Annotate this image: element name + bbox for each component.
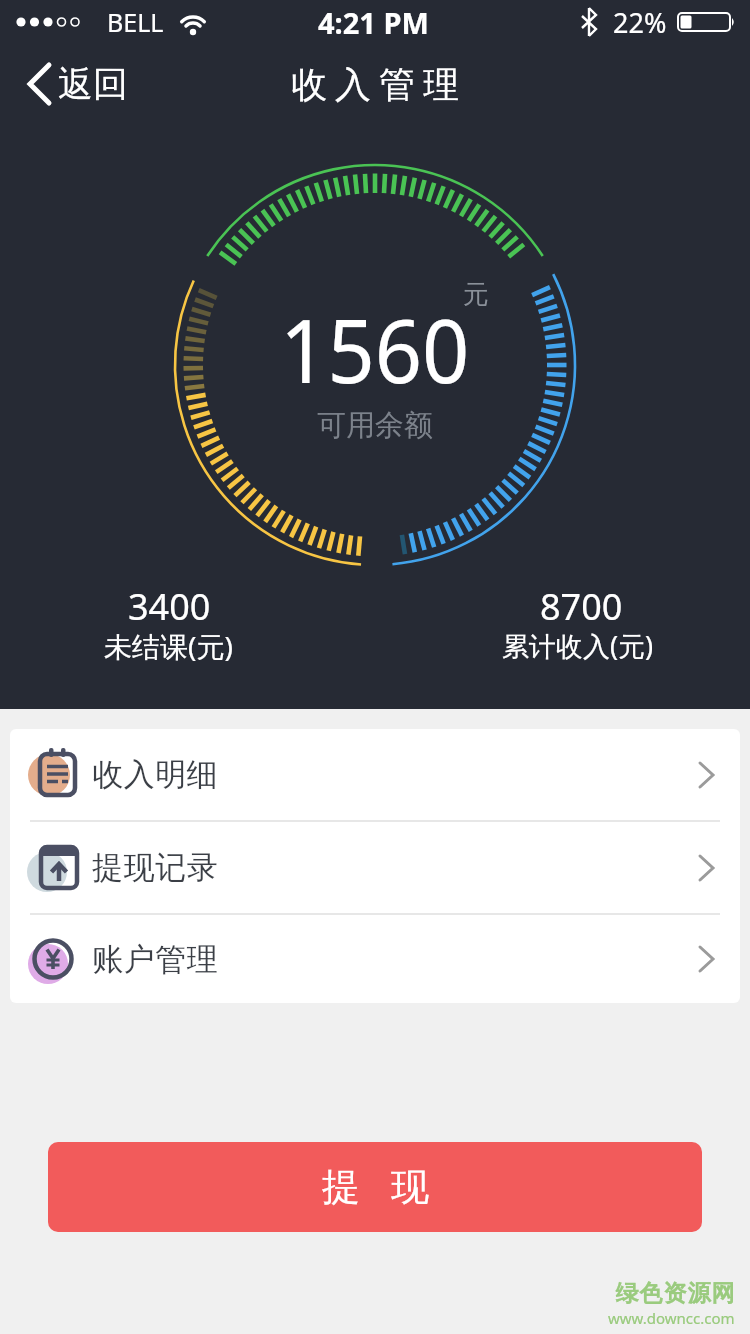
- staticText: 账户管理: [92, 940, 218, 979]
- button[interactable]: 提现记录: [10, 822, 740, 913]
- button[interactable]: 收入明细: [10, 729, 740, 820]
- staticText: 收入明细: [92, 755, 218, 794]
- button[interactable]: 账户管理: [10, 915, 740, 1003]
- staticText: 22%: [613, 4, 667, 41]
- staticText: 1560: [280, 289, 470, 409]
- staticText: 可用余额: [317, 407, 433, 444]
- staticText: 返回: [58, 62, 128, 106]
- staticText: 元: [463, 278, 489, 311]
- staticText: 收入管理: [287, 62, 463, 107]
- staticText: 8700: [540, 582, 623, 620]
- staticText: 提: [322, 1163, 360, 1211]
- staticText: BELL: [107, 5, 164, 39]
- staticText: 3400: [128, 582, 211, 620]
- staticText: 提现记录: [92, 848, 218, 887]
- button[interactable]: 返回: [24, 60, 128, 108]
- button[interactable]: 提: [48, 1142, 702, 1232]
- staticText: 未结课(元): [104, 627, 233, 661]
- staticText: 现: [391, 1163, 429, 1211]
- staticText: 累计收入(元): [502, 627, 654, 661]
- staticText: 4:21 PM: [318, 3, 429, 42]
- staticText: www.downcc.com: [608, 1308, 735, 1328]
- staticText: 绿色资源网: [615, 1279, 735, 1308]
